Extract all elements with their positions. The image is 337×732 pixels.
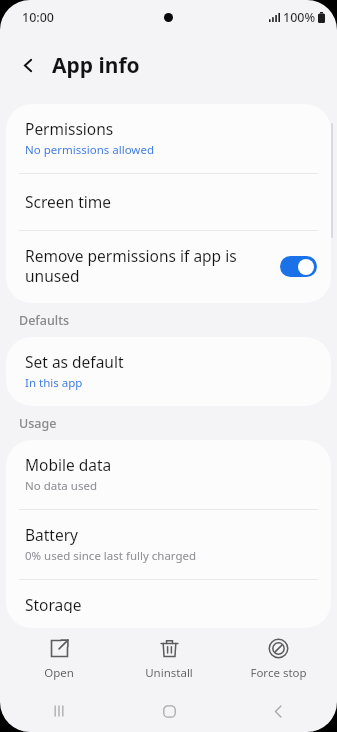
staticText: Usage: [19, 415, 57, 432]
button[interactable]: Screen time: [6, 174, 331, 230]
button[interactable]: Recent apps: [9, 690, 109, 732]
button[interactable]: Remove permissions if app is unused: [6, 231, 331, 303]
staticText: 100%: [283, 9, 316, 26]
staticText: Screen time: [25, 191, 111, 212]
button[interactable]: Remove permissions if app is unused togg…: [280, 256, 317, 277]
staticText: No permissions allowed: [25, 142, 154, 158]
staticText: Force stop: [250, 665, 307, 681]
staticText: In this app: [25, 375, 83, 391]
staticText: Battery: [25, 524, 79, 545]
staticText: Remove permissions if app is unused: [25, 245, 272, 287]
staticText: 10:00: [22, 9, 55, 26]
staticText: Set as default: [25, 351, 124, 372]
staticText: App info: [52, 51, 140, 80]
staticText: Storage: [25, 594, 82, 613]
button[interactable]: Battery: [6, 510, 331, 579]
staticText: No data used: [25, 478, 97, 494]
button[interactable]: Set as default: [6, 337, 331, 406]
button[interactable]: Back: [228, 690, 328, 732]
button[interactable]: Force stop: [228, 634, 328, 685]
staticText: Open: [44, 665, 74, 681]
staticText: Mobile data: [25, 454, 112, 475]
staticText: Permissions: [25, 118, 114, 139]
button[interactable]: Back: [10, 47, 46, 83]
button[interactable]: Mobile data: [6, 440, 331, 509]
staticText: Defaults: [19, 312, 70, 329]
button[interactable]: Storage: [6, 580, 331, 628]
button[interactable]: Open: [9, 634, 109, 685]
staticText: Uninstall: [145, 665, 193, 681]
button[interactable]: Uninstall: [119, 634, 219, 685]
button[interactable]: Home: [119, 690, 219, 732]
button[interactable]: Permissions: [6, 104, 331, 173]
staticText: 0% used since last fully charged: [25, 548, 197, 564]
